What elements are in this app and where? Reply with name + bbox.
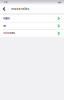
- staticText: ▮▮▮: [58, 1, 61, 3]
- button[interactable]: Aide: [0, 22, 64, 29]
- staticText: Réglages: [3, 17, 10, 20]
- button[interactable]: Réglages: [0, 15, 64, 22]
- staticText: Plus d'infos: [11, 7, 28, 10]
- button[interactable]: Informations: [0, 30, 64, 37]
- staticText: Aide: [3, 25, 6, 27]
- button[interactable]: Back: [0, 5, 11, 13]
- staticText: Informations: [3, 32, 15, 34]
- staticText: 9:41: [3, 1, 7, 4]
